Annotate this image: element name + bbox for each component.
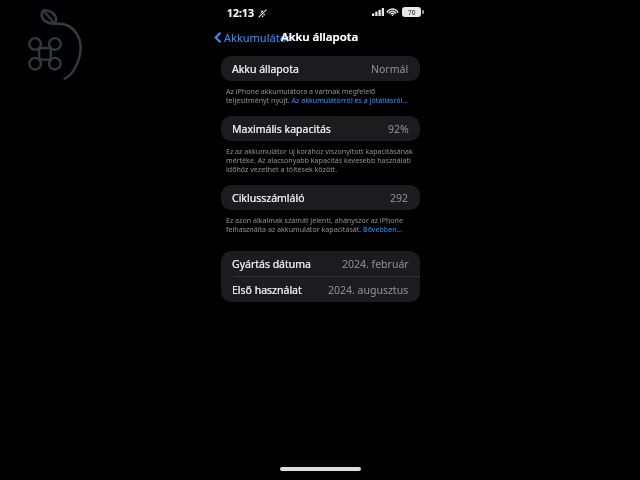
staticText: Ciklusszámláló — [232, 191, 305, 205]
staticText: Első használat — [232, 283, 302, 297]
staticText: Normál — [371, 62, 409, 76]
staticText: Akku állapota — [232, 62, 299, 76]
staticText: Ez azon alkalmak számát jelenti, ahánysz… — [226, 215, 418, 234]
button[interactable]: Első használat — [221, 277, 420, 302]
staticText: Ez az akkumulátor új korához viszonyítot… — [226, 146, 418, 174]
staticText: Maximális kapacitás — [232, 122, 331, 136]
staticText: 12:13 — [227, 6, 254, 20]
button[interactable]: Gyártás dátuma — [221, 251, 420, 276]
button[interactable]: Akkumulátor — [212, 27, 294, 48]
button[interactable]: Maximális kapacitás — [221, 116, 420, 141]
button[interactable]: Akku állapota — [221, 56, 420, 81]
staticText: Akkumulátor — [224, 30, 291, 45]
button[interactable]: Ciklusszámláló — [221, 185, 420, 210]
staticText: Az iPhone akkumulátora a vártnak megfele… — [226, 86, 418, 105]
staticText: 2024. augusztus — [328, 283, 409, 297]
staticText: Gyártás dátuma — [232, 257, 312, 271]
staticText: Akku állapota — [281, 29, 359, 45]
staticText: 92% — [388, 122, 409, 136]
staticText: 292 — [390, 191, 409, 205]
staticText: 70 — [408, 8, 416, 17]
staticText: 2024. február — [342, 257, 409, 271]
